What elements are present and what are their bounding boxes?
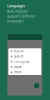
- staticText: Spanish: [14, 55, 24, 58]
- staticText: Auto reply can: [7, 10, 28, 13]
- staticText: languages: [7, 19, 23, 23]
- staticText: support 5 different: [7, 14, 35, 18]
- staticText: Italian: [14, 65, 22, 69]
- button[interactable]: Add language: [34, 83, 39, 88]
- button[interactable]: Italian: [9, 64, 41, 70]
- staticText: Portuguese: [14, 60, 29, 63]
- button[interactable]: English: [9, 48, 41, 54]
- staticText: Languages: [7, 3, 25, 8]
- button[interactable]: French: [9, 70, 41, 75]
- staticText: French: [14, 71, 22, 74]
- button[interactable]: Spanish: [9, 54, 41, 59]
- staticText: English: [14, 49, 24, 53]
- button[interactable]: Portuguese: [9, 59, 41, 64]
